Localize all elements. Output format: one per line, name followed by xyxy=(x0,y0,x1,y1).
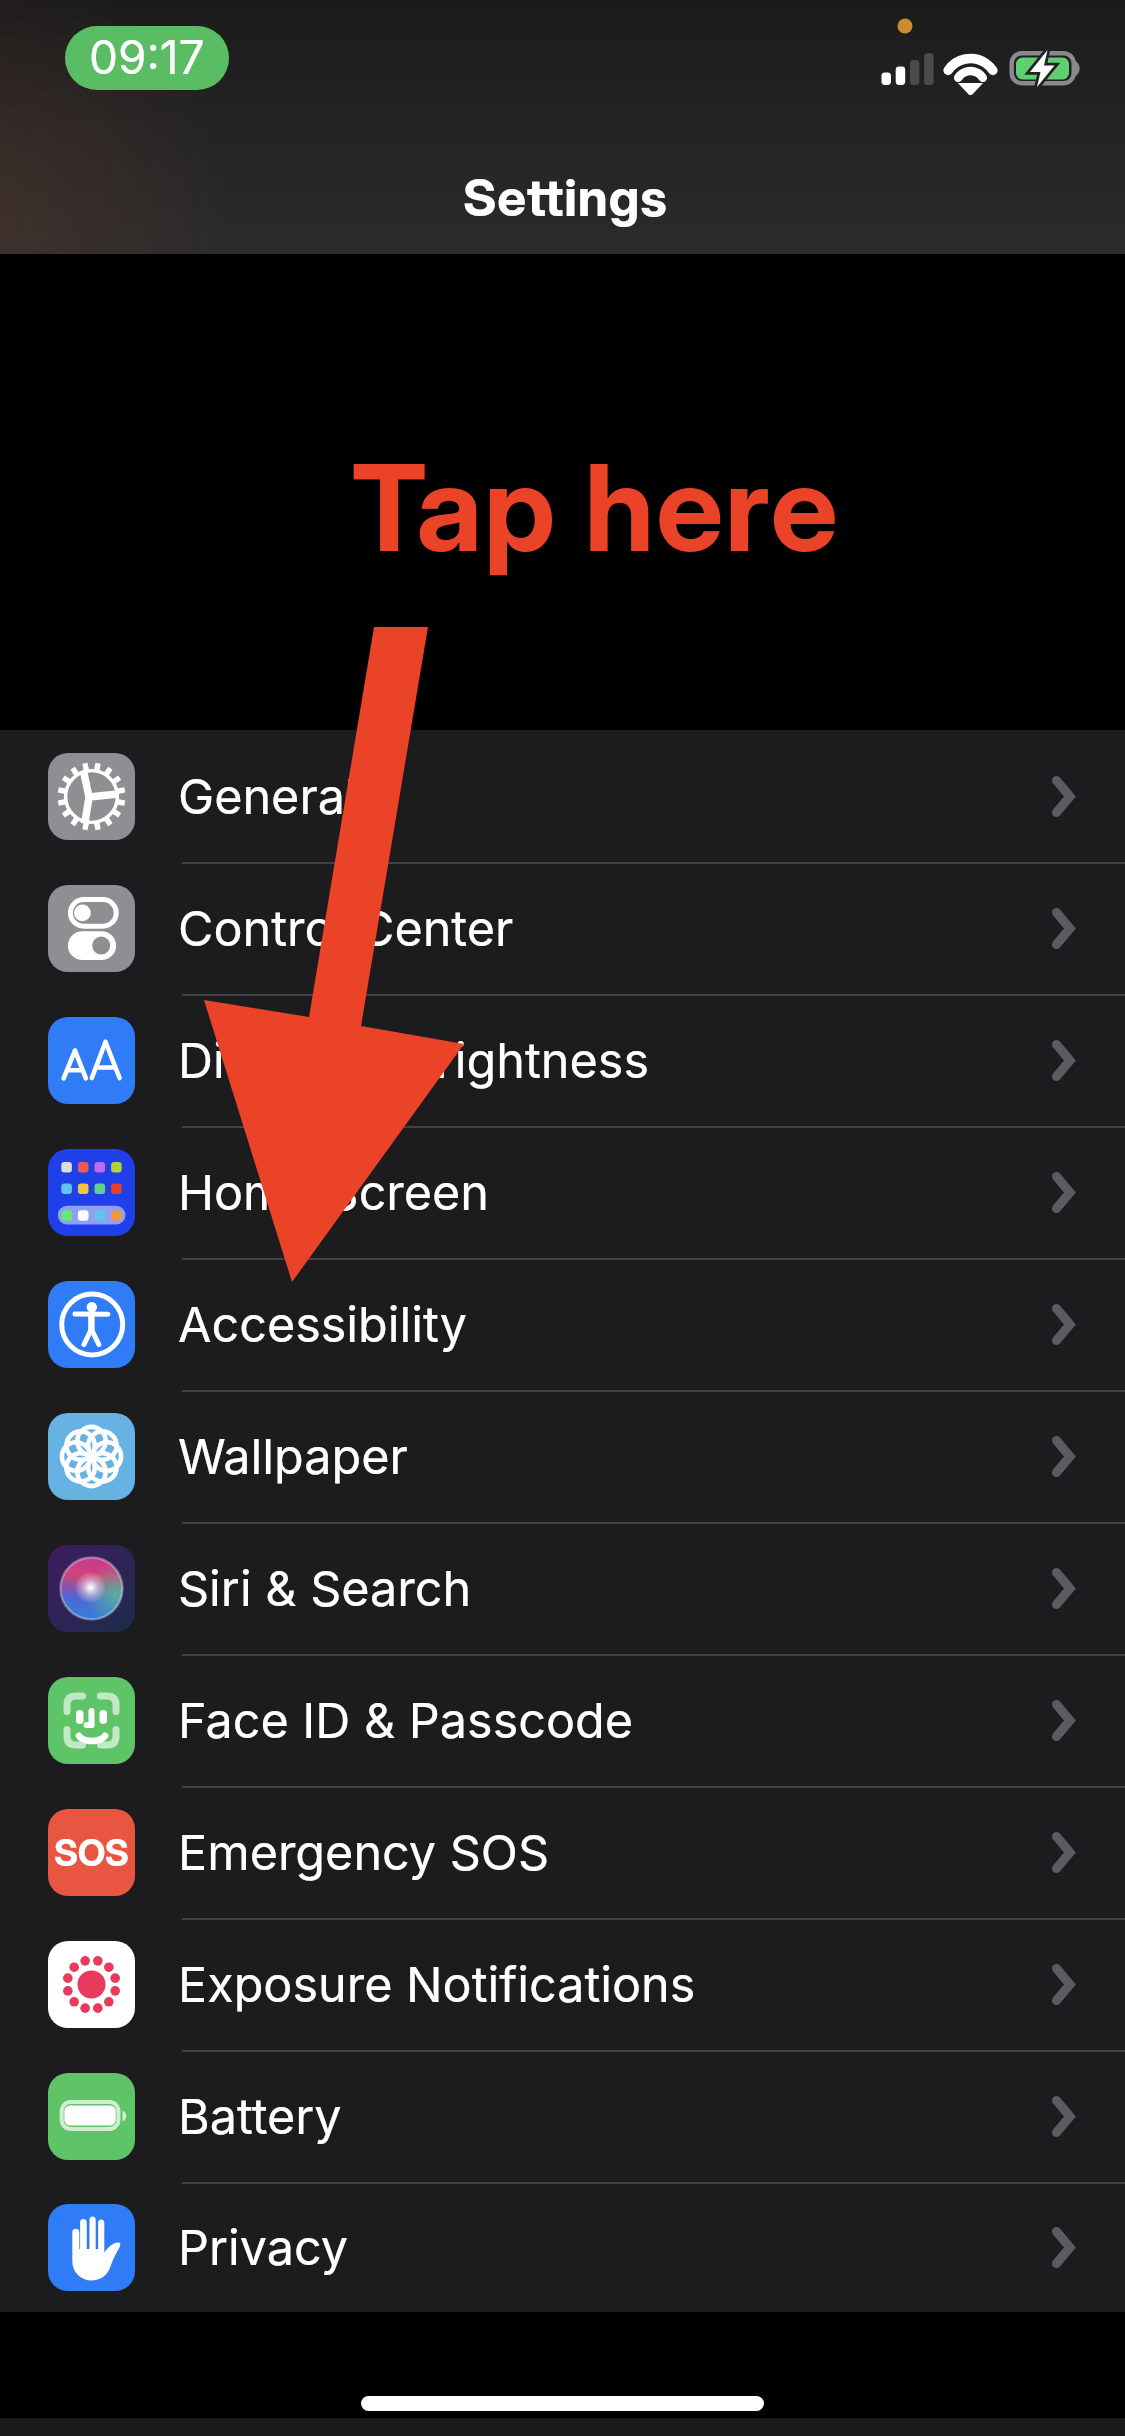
staticText: Exposure Notifications xyxy=(178,1955,696,2014)
button[interactable]: Face ID & Passcode xyxy=(0,1654,1125,1786)
staticText: Home Screen xyxy=(178,1163,490,1222)
staticText: Settings xyxy=(463,166,668,228)
staticText: 09:17 xyxy=(89,29,205,85)
button[interactable]: Home Screen xyxy=(0,1126,1125,1258)
staticText: Siri & Search xyxy=(178,1559,472,1618)
staticText: Battery xyxy=(178,2087,342,2146)
button[interactable]: Exposure Notifications xyxy=(0,1918,1125,2050)
button[interactable]: Wallpaper xyxy=(0,1390,1125,1522)
button[interactable]: Emergency SOS xyxy=(0,1786,1125,1918)
button[interactable]: Control Center xyxy=(0,862,1125,994)
staticText: General xyxy=(178,767,357,826)
staticText: Face ID & Passcode xyxy=(178,1691,634,1750)
staticText: Accessibility xyxy=(178,1295,468,1354)
button[interactable]: General xyxy=(0,730,1125,862)
button[interactable]: Siri & Search xyxy=(0,1522,1125,1654)
staticText: Control Center xyxy=(178,899,514,958)
button[interactable]: Display & Brightness xyxy=(0,994,1125,1126)
button[interactable]: Accessibility xyxy=(0,1258,1125,1390)
staticText: Tap here xyxy=(351,435,840,580)
button[interactable]: Battery xyxy=(0,2050,1125,2182)
staticText: Privacy xyxy=(178,2218,349,2277)
button[interactable]: Return to call, 09:17 xyxy=(65,26,229,90)
staticText: Display & Brightness xyxy=(178,1031,650,1090)
staticText: Wallpaper xyxy=(178,1427,408,1486)
button[interactable]: Privacy xyxy=(0,2182,1125,2312)
staticText: Emergency SOS xyxy=(178,1823,550,1882)
staticText: SOS xyxy=(54,1830,129,1875)
